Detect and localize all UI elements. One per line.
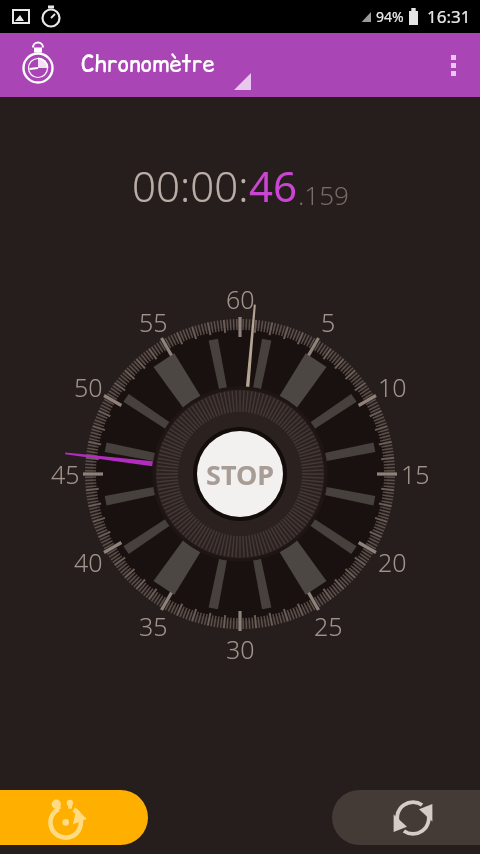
staticText: STOP (206, 456, 275, 493)
staticText: 30 (226, 632, 255, 666)
staticText: 20 (378, 545, 407, 579)
button[interactable]: Reset (332, 790, 480, 845)
staticText: Chronomètre (81, 49, 215, 80)
staticText: 35 (139, 609, 168, 643)
button[interactable]: Lap (0, 790, 148, 845)
button[interactable]: Stop (195, 429, 285, 519)
staticText: 16:31 (427, 5, 471, 28)
staticText: 00:00: (132, 157, 249, 214)
staticText: 15 (401, 457, 430, 491)
staticText: 55 (139, 305, 168, 339)
staticText: 60 (226, 282, 255, 316)
staticText: 40 (74, 545, 103, 579)
staticText: 45 (51, 457, 80, 491)
staticText: 46 (249, 157, 298, 214)
staticText: 10 (378, 370, 407, 404)
staticText: .159 (298, 177, 349, 212)
staticText: 50 (74, 370, 103, 404)
other: App icon (16, 43, 60, 87)
staticText: 5 (321, 305, 336, 339)
staticText: 25 (314, 609, 343, 643)
button[interactable]: More options (437, 39, 470, 92)
staticText: 94% (376, 7, 404, 26)
